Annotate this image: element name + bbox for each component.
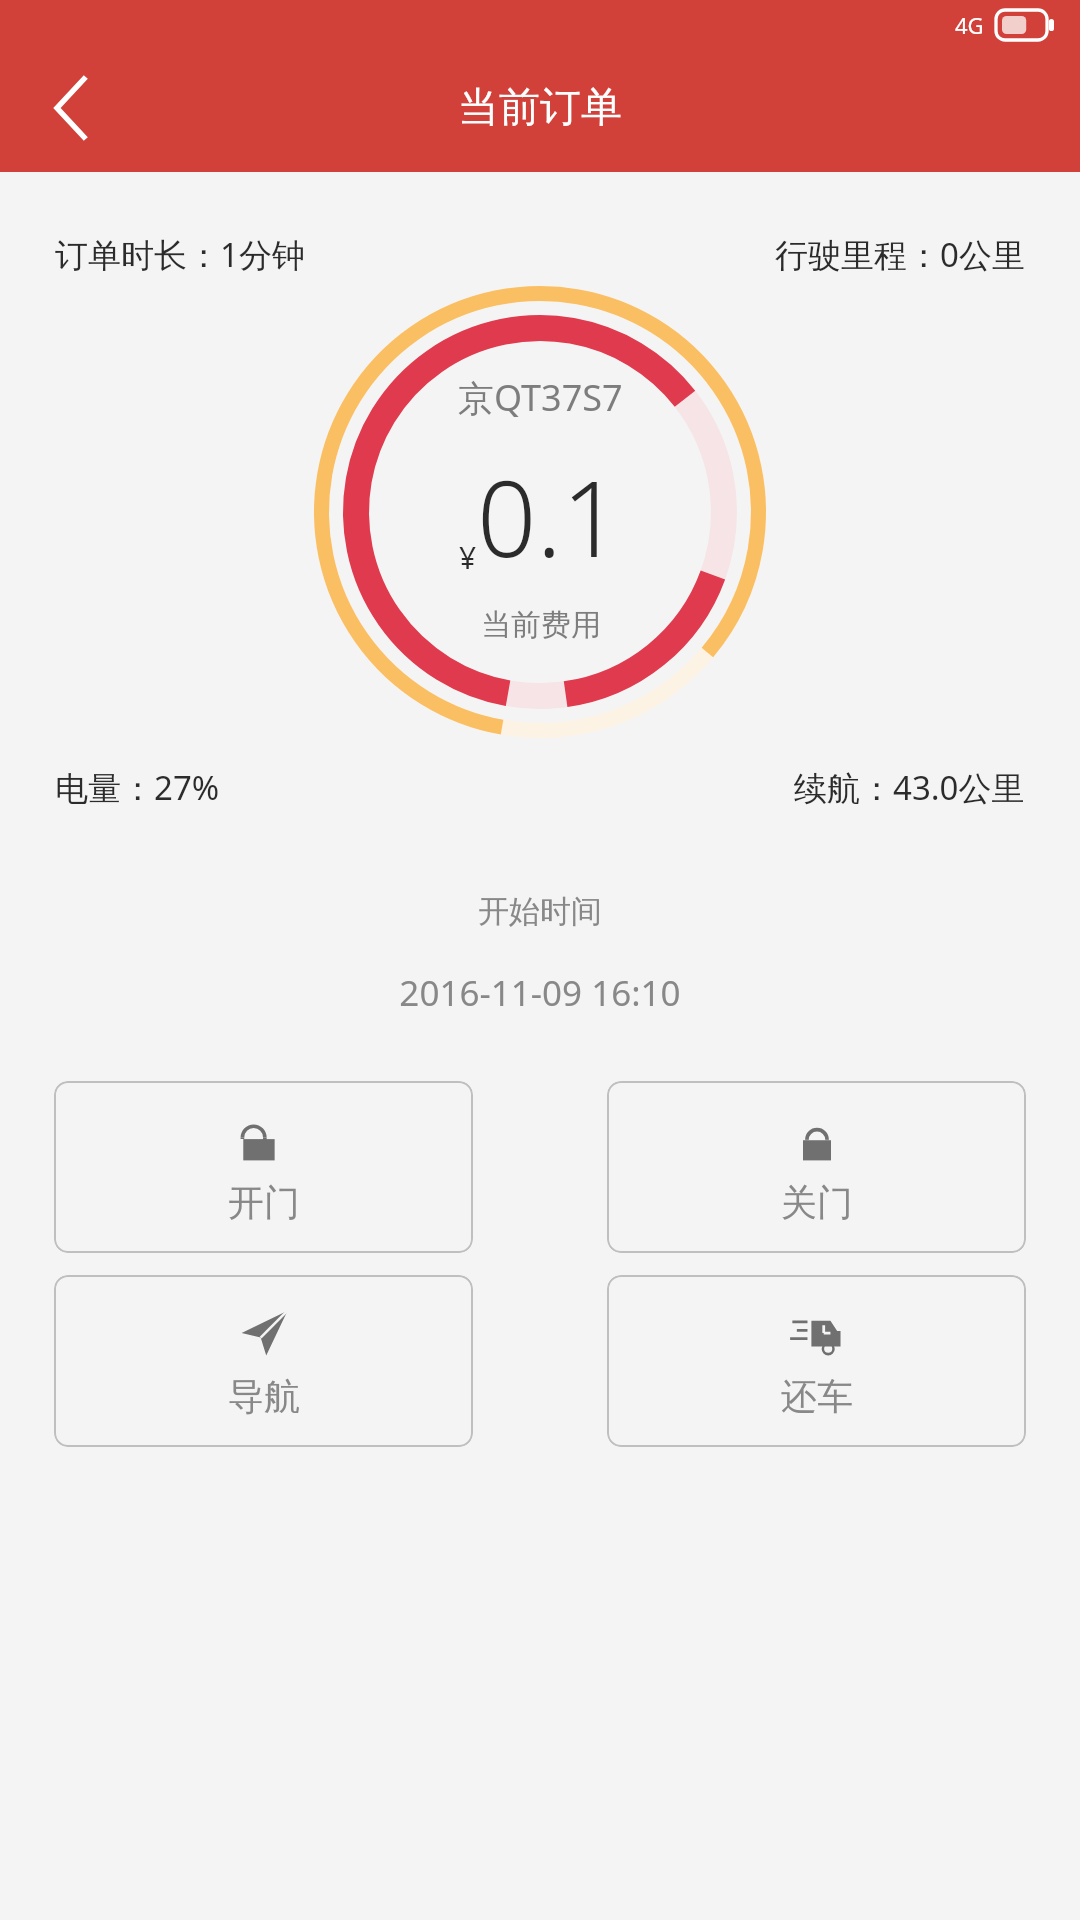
staticText: 导航	[228, 1374, 300, 1419]
staticText: 4G	[955, 10, 984, 40]
staticText: 2016-11-09 16:10	[0, 969, 1080, 1017]
staticText: 开门	[228, 1180, 300, 1225]
staticText: 还车	[781, 1374, 853, 1419]
staticText: 开始时间	[0, 892, 1080, 931]
staticText: 续航：43.0公里	[794, 765, 1025, 810]
button[interactable]: 关门	[607, 1081, 1026, 1253]
button[interactable]: 开门	[54, 1081, 473, 1253]
staticText: 当前订单	[458, 82, 622, 134]
staticText: 关门	[781, 1180, 853, 1225]
button[interactable]: 导航	[54, 1275, 473, 1447]
staticText: 当前费用	[481, 606, 601, 644]
staticText: ¥	[459, 537, 477, 578]
staticText: 京QT37S7	[458, 373, 623, 422]
staticText: 0.1	[477, 446, 622, 588]
staticText: 订单时长：1分钟	[55, 232, 305, 277]
staticText: 电量：27%	[55, 765, 220, 810]
button[interactable]: 还车	[607, 1275, 1026, 1447]
staticText: 行驶里程：0公里	[775, 232, 1025, 277]
button[interactable]: Back	[18, 53, 128, 163]
